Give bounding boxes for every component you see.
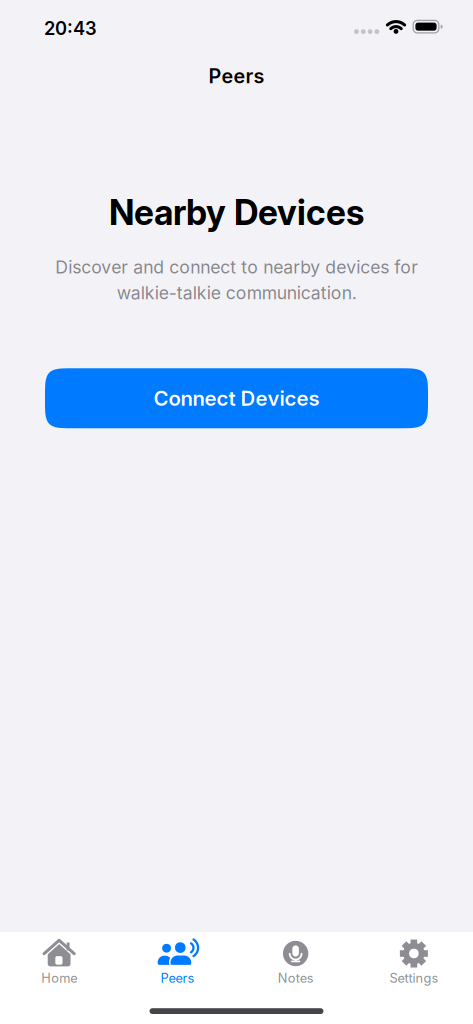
button[interactable]: Connect Devices [45, 368, 428, 428]
staticText: Connect Devices [153, 386, 319, 410]
staticText: Home [41, 970, 77, 986]
staticText: Notes [278, 970, 314, 986]
button[interactable]: Home [0, 939, 118, 986]
staticText: Nearby Devices [109, 192, 364, 233]
button[interactable]: Settings [355, 939, 473, 986]
staticText: Discover and connect to nearby devices f… [55, 257, 418, 303]
button[interactable]: Peers [118, 939, 236, 986]
staticText: Peers [208, 64, 264, 88]
staticText: Settings [389, 970, 438, 986]
button[interactable]: Notes [236, 939, 355, 986]
staticText: Peers [160, 970, 194, 986]
staticText: 20:43 [44, 17, 97, 39]
